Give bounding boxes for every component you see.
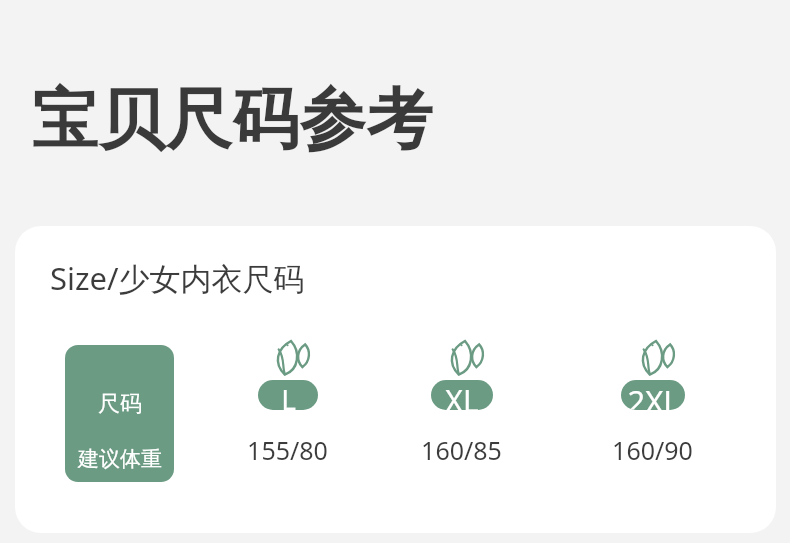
staticText: XL [445, 380, 479, 410]
staticText: 2XL [627, 380, 680, 410]
staticText: Size/少女内衣尺码 [50, 257, 305, 299]
staticText: 宝贝尺码参考 [31, 78, 433, 161]
staticText: 160/90 [612, 433, 693, 467]
button[interactable]: Size L, 155/80 [247, 336, 328, 467]
staticText: 建议体重 [78, 446, 162, 472]
staticText: 160/85 [421, 433, 502, 467]
button[interactable]: Size XL, 160/85 [421, 336, 502, 467]
staticText: 尺码 [98, 390, 142, 418]
button[interactable]: 尺码 [65, 345, 174, 482]
staticText: L [281, 380, 296, 410]
staticText: 155/80 [247, 433, 328, 467]
button[interactable]: Size 2XL, 160/90 [612, 336, 693, 467]
